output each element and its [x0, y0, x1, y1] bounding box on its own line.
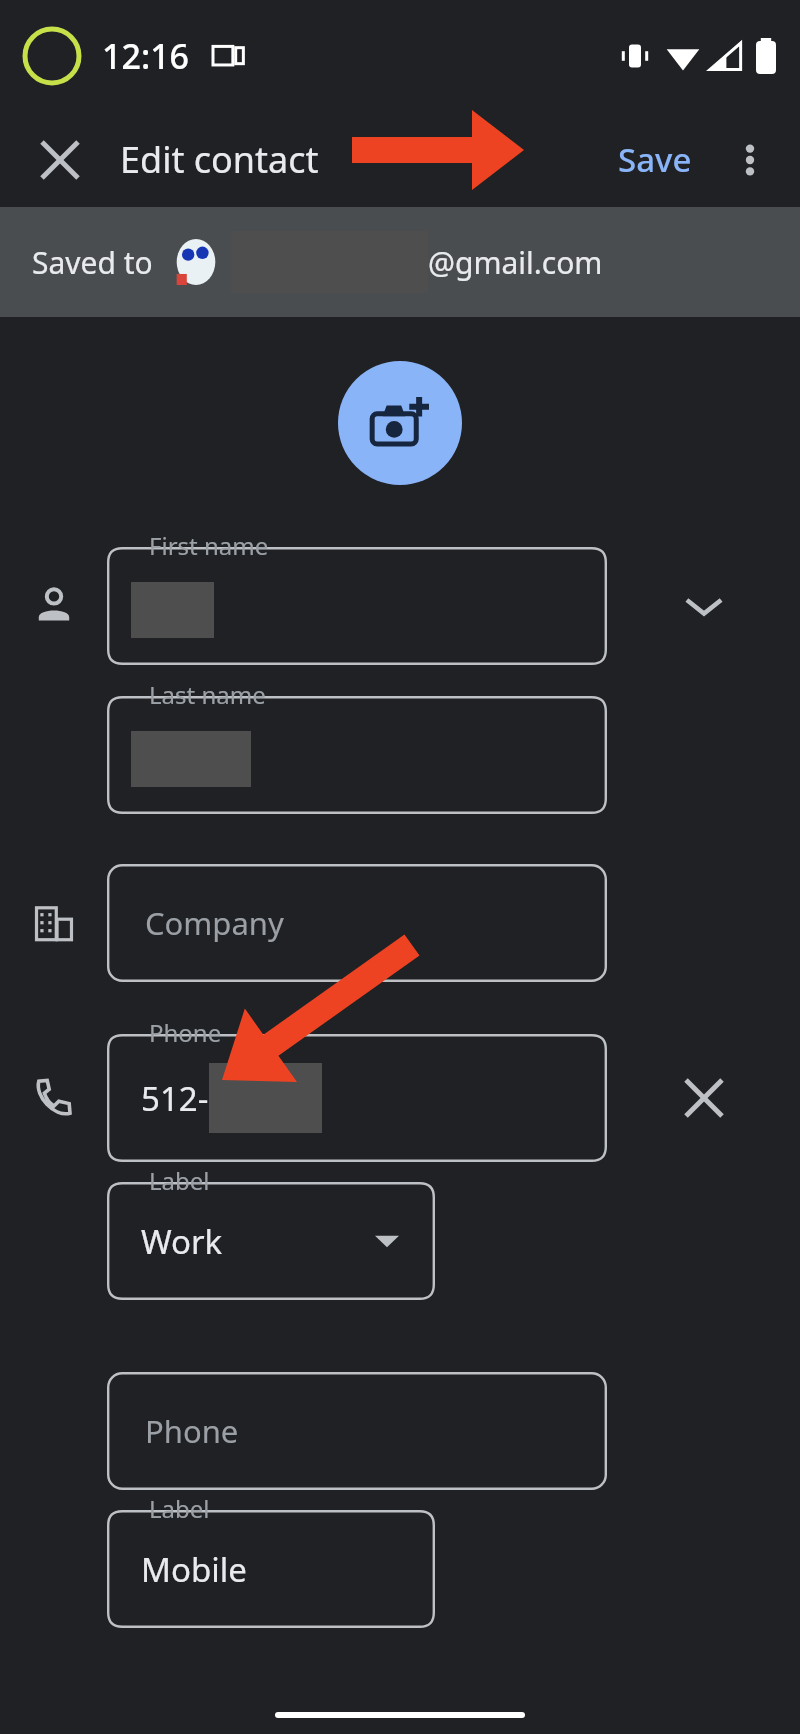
staticText: 512-: [141, 1076, 209, 1121]
staticText: 12:16: [102, 33, 190, 79]
button[interactable]: First name: [107, 547, 607, 665]
staticText: Phone: [145, 1410, 239, 1452]
button[interactable]: Phone: [107, 1372, 607, 1490]
staticText: Save: [618, 137, 692, 182]
staticText: Label: [149, 1164, 210, 1197]
staticText: Edit contact: [120, 135, 319, 184]
staticText: Phone: [149, 1016, 222, 1049]
button[interactable]: Company: [107, 864, 607, 982]
staticText: Saved to: [32, 242, 153, 283]
button[interactable]: Last name: [107, 696, 607, 814]
staticText: Last name: [149, 678, 266, 711]
staticText: First name: [149, 529, 269, 562]
button[interactable]: Remove phone number: [607, 1034, 800, 1162]
button[interactable]: Expand name fields: [607, 547, 800, 665]
staticText: Work: [141, 1219, 223, 1264]
staticText: Label: [149, 1492, 210, 1525]
button[interactable]: Close: [22, 122, 98, 198]
staticText: Company: [145, 902, 284, 944]
button[interactable]: Phone: [107, 1034, 607, 1162]
button[interactable]: Saved to: [0, 207, 800, 317]
staticText: Mobile: [141, 1547, 247, 1592]
button[interactable]: Label: [107, 1510, 435, 1628]
button[interactable]: Label: [107, 1182, 435, 1300]
button[interactable]: Add contact photo: [338, 361, 462, 485]
button[interactable]: Save: [608, 129, 702, 190]
staticText: @gmail.com: [428, 242, 603, 283]
button[interactable]: More options: [714, 124, 786, 196]
